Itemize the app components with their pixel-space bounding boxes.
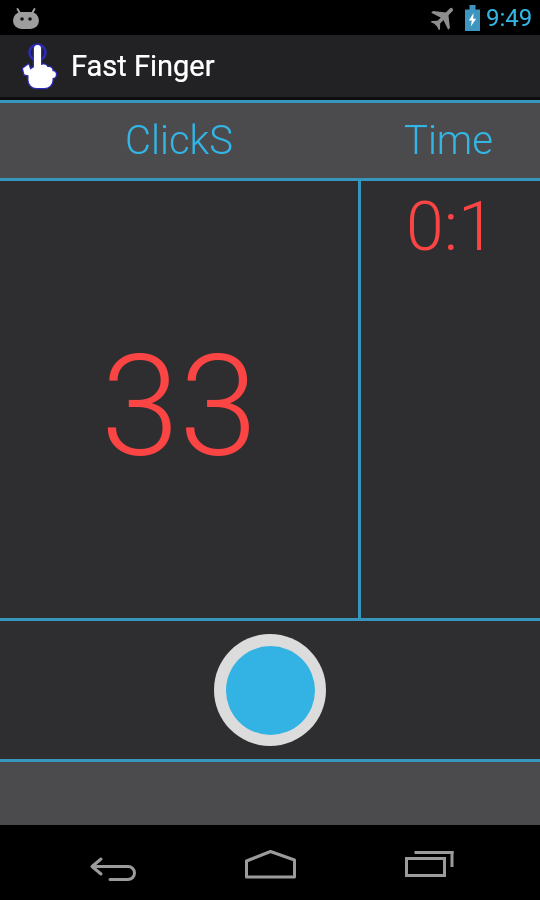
button[interactable]: [214, 634, 326, 746]
button[interactable]: Time: [358, 103, 540, 178]
button[interactable]: Fast Finger: [0, 35, 540, 97]
button[interactable]: [32, 839, 194, 889]
staticText: 33: [101, 324, 258, 489]
staticText: 9:49: [486, 4, 533, 32]
staticText: Time: [404, 117, 494, 164]
staticText: Fast Finger: [71, 49, 215, 83]
button[interactable]: ClickS: [0, 103, 358, 178]
button[interactable]: [189, 839, 351, 889]
staticText: 0:1: [406, 187, 496, 267]
staticText: ClickS: [125, 117, 233, 164]
button[interactable]: [349, 839, 511, 889]
